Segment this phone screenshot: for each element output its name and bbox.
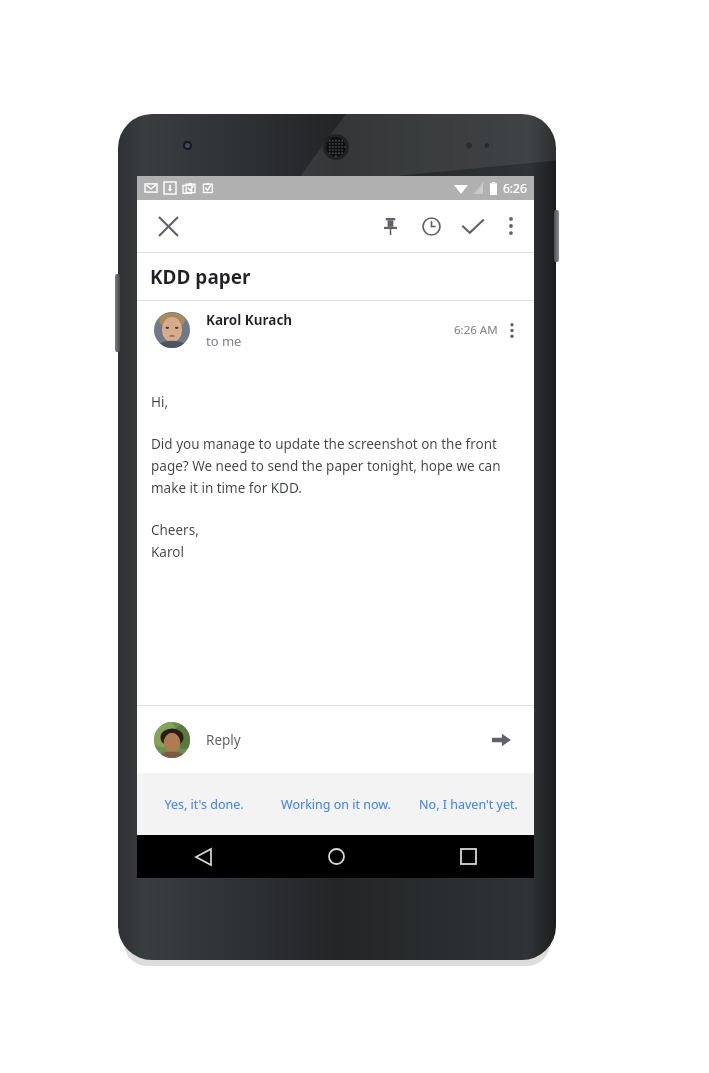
button[interactable]: Close xyxy=(147,205,189,247)
staticText: Cheers, xyxy=(151,521,199,539)
button[interactable]: Back xyxy=(137,835,270,878)
staticText: Working on it now. xyxy=(281,796,391,813)
button[interactable]: Reply xyxy=(137,706,534,773)
staticText: Karol Kurach xyxy=(206,311,293,329)
staticText: Karol xyxy=(151,543,184,561)
button[interactable]: More options xyxy=(494,204,528,248)
staticText: 6:26 xyxy=(503,180,527,196)
button[interactable]: Archive xyxy=(452,204,494,248)
staticText: make it in time for KDD. xyxy=(151,479,302,497)
staticText: Did you manage to update the screenshot … xyxy=(151,435,497,453)
button[interactable]: Pin xyxy=(370,204,410,248)
button[interactable]: Message options xyxy=(498,310,526,350)
staticText: page? We need to send the paper tonight,… xyxy=(151,457,501,475)
button[interactable]: Yes, it's done. xyxy=(137,773,270,835)
button[interactable]: Recent apps xyxy=(402,835,534,878)
button[interactable]: Home xyxy=(270,835,402,878)
button[interactable]: Working on it now. xyxy=(270,773,402,835)
button[interactable]: Snooze xyxy=(410,204,452,248)
staticText: 6:26 AM xyxy=(454,322,498,338)
staticText: Reply xyxy=(206,731,241,749)
button[interactable]: No, I haven't yet. xyxy=(402,773,534,835)
button[interactable]: Karol Kurach xyxy=(137,301,534,359)
staticText: No, I haven't yet. xyxy=(419,796,518,813)
staticText: to me xyxy=(206,332,242,350)
button[interactable]: Send xyxy=(484,723,518,757)
staticText: KDD paper xyxy=(150,264,251,290)
staticText: Yes, it's done. xyxy=(164,796,244,813)
staticText: Hi, xyxy=(151,393,169,411)
